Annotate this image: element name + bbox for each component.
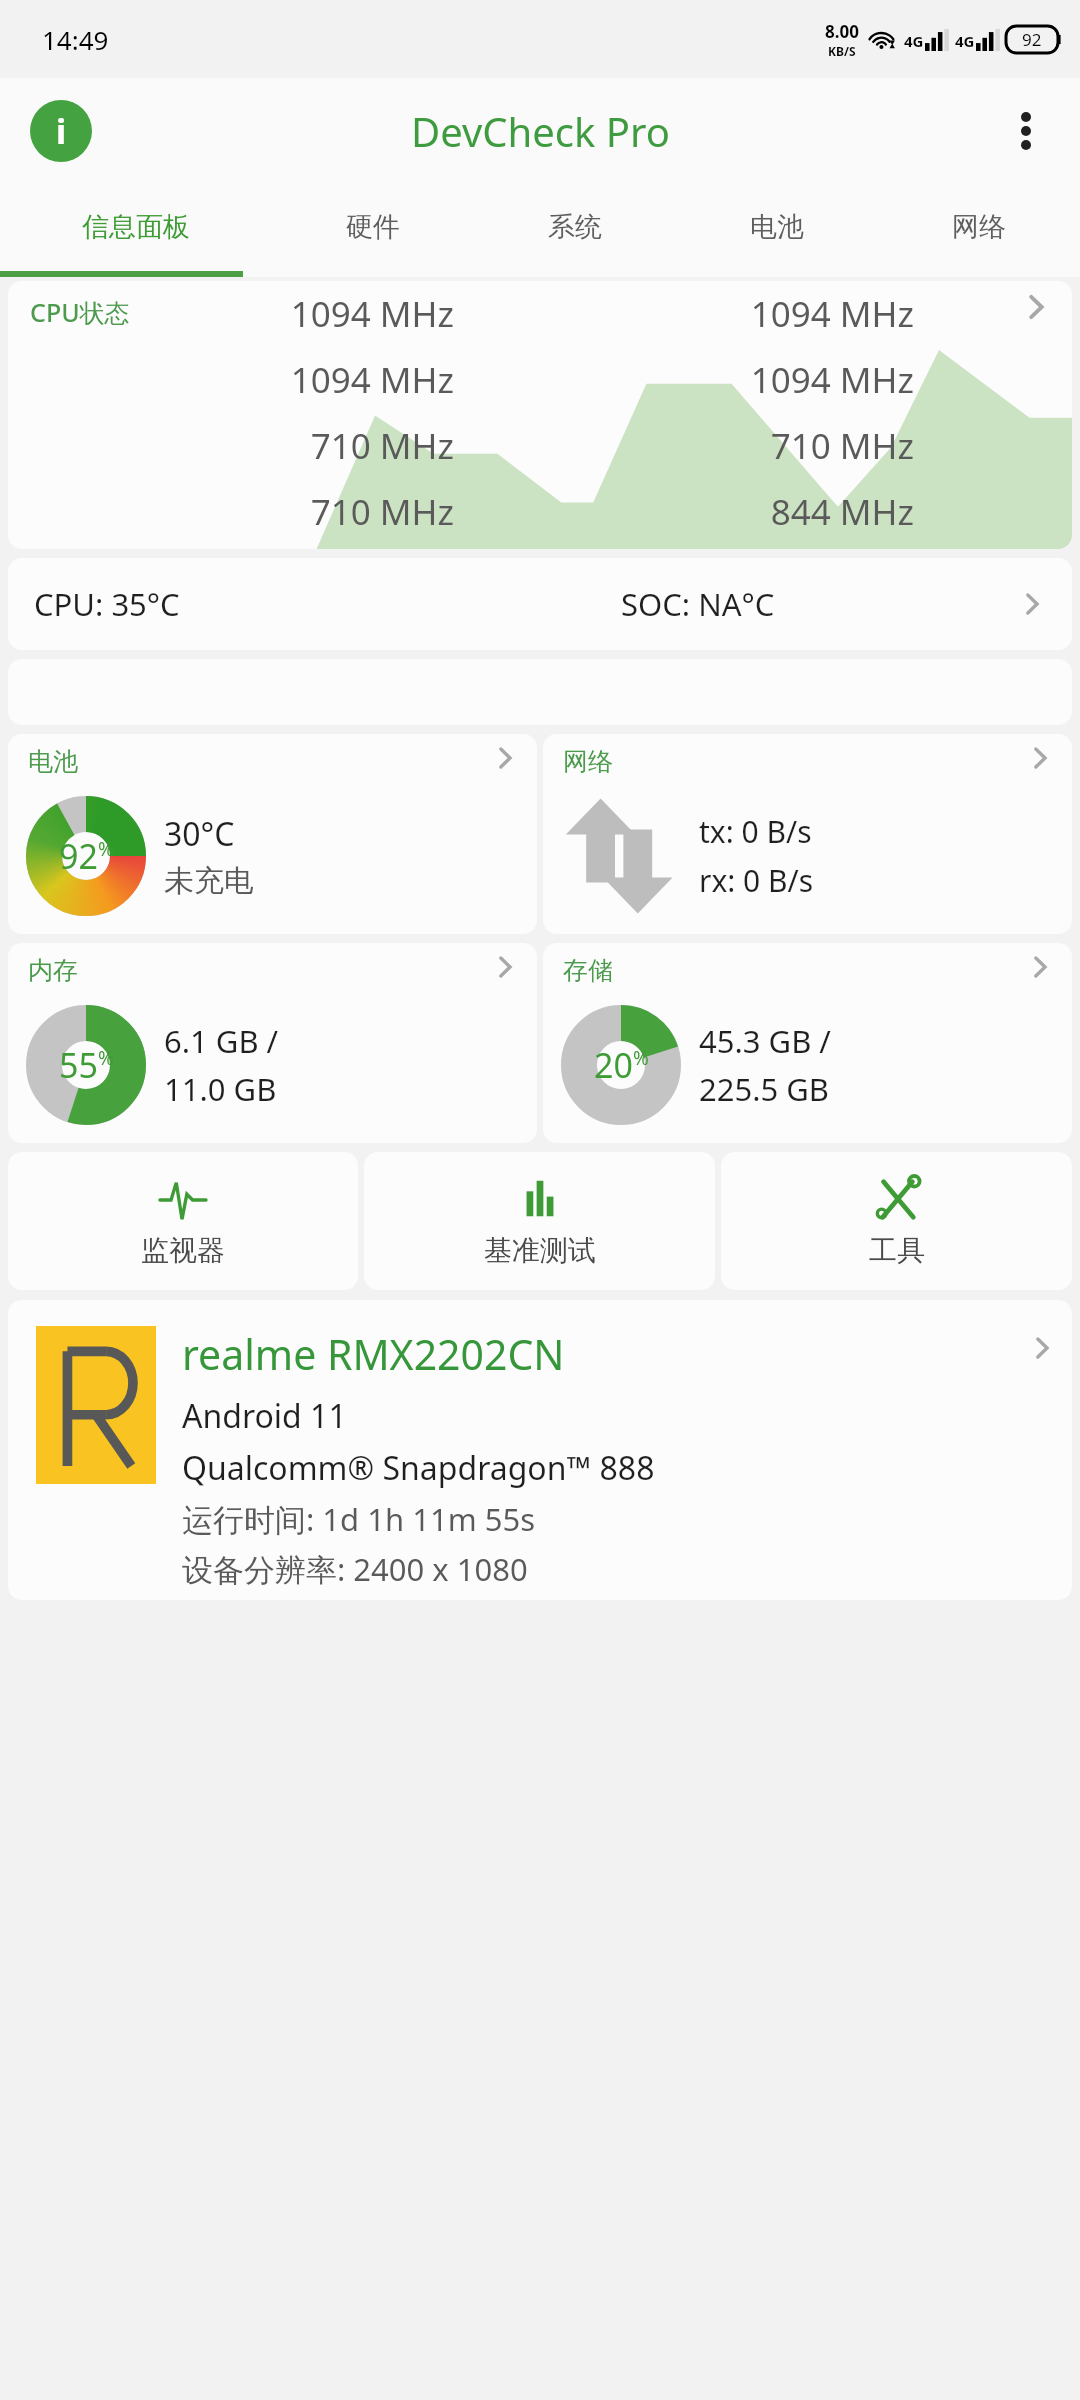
staticText: SOC: NA°C (621, 583, 775, 625)
staticText: 1094 MHz (18, 356, 454, 404)
staticText: 225.5 GB (699, 1068, 830, 1110)
staticText: 92 (1022, 28, 1042, 51)
staticText: 电池 (28, 746, 78, 777)
staticText: 710 MHz (18, 488, 454, 528)
staticText: 14:49 (42, 22, 109, 57)
staticText: 710 MHz (18, 422, 454, 470)
button[interactable]: 网络 (878, 183, 1080, 271)
staticText: 1094 MHz (478, 290, 914, 338)
staticText: 监视器 (141, 1233, 225, 1268)
button[interactable]: 电池 (8, 734, 537, 934)
button[interactable]: 内存 (8, 943, 537, 1143)
button[interactable]: realme RMX2202CN (8, 1300, 1072, 1600)
staticText: 1094 MHz (18, 290, 454, 338)
staticText: 20 (594, 1042, 633, 1088)
button[interactable]: 存储 (543, 943, 1072, 1143)
staticText: DevCheck Pro (411, 104, 670, 158)
button[interactable]: CPU状态 (8, 281, 1072, 549)
button[interactable]: 基准测试 (364, 1152, 715, 1290)
staticText: 系统 (548, 210, 602, 244)
staticText: 8.00 (825, 20, 859, 43)
staticText: % (98, 1045, 114, 1071)
button[interactable]: 电池 (676, 183, 878, 271)
staticText: 710 MHz (478, 422, 914, 470)
staticText: 4G (904, 31, 924, 51)
staticText: 信息面板 (82, 210, 190, 244)
button[interactable]: CPU: 35°C (8, 558, 1072, 650)
staticText: KB/S (828, 43, 856, 59)
staticText: 电池 (750, 210, 804, 244)
staticText: i (56, 108, 67, 154)
staticText: 844 MHz (478, 488, 914, 528)
staticText: tx: 0 B/s (699, 811, 812, 852)
staticText: 30°C (164, 812, 235, 856)
staticText: 存储 (563, 955, 613, 986)
button[interactable]: 工具 (721, 1152, 1072, 1290)
staticText: 55 (59, 1042, 98, 1088)
button[interactable]: 系统 (474, 183, 676, 271)
button[interactable]: 信息面板 (0, 183, 272, 271)
staticText: 未充电 (164, 862, 254, 900)
staticText: 11.0 GB (164, 1068, 277, 1110)
staticText: CPU状态 (30, 295, 130, 329)
button[interactable]: 硬件 (272, 183, 474, 271)
staticText: % (98, 836, 114, 862)
staticText: 45.3 GB / (699, 1020, 831, 1062)
staticText: Android 11 (182, 1394, 347, 1438)
staticText: 硬件 (346, 210, 400, 244)
staticText: 网络 (952, 210, 1006, 244)
staticText: 1094 MHz (478, 356, 914, 404)
staticText: rx: 0 B/s (699, 860, 814, 901)
staticText: 运行时间: 1d 1h 11m 55s (182, 1498, 535, 1540)
staticText: 设备分辨率: 2400 x 1080 (182, 1548, 528, 1590)
staticText: 工具 (869, 1233, 925, 1268)
staticText: 基准测试 (484, 1233, 596, 1268)
staticText: 内存 (28, 955, 78, 986)
button[interactable]: More options (998, 103, 1054, 159)
staticText: 6.1 GB / (164, 1020, 279, 1062)
staticText: % (633, 1045, 649, 1071)
button[interactable]: 网络 (543, 734, 1072, 934)
staticText: realme RMX2202CN (182, 1326, 565, 1382)
staticText: 92 (59, 833, 98, 879)
button[interactable]: 监视器 (8, 1152, 358, 1290)
staticText: Qualcomm® Snapdragon™ 888 (182, 1446, 655, 1490)
button[interactable]: About (30, 100, 92, 162)
staticText: CPU: 35°C (34, 583, 180, 625)
staticText: 网络 (563, 746, 613, 777)
staticText: 4G (955, 31, 975, 51)
